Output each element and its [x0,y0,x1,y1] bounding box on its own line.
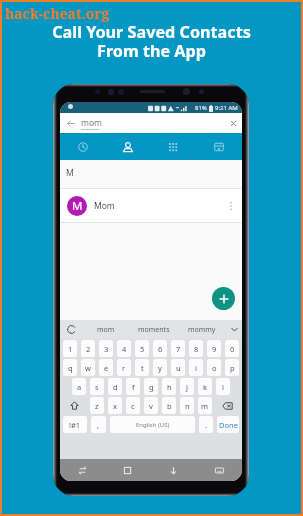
staticText: 1 [68,344,73,354]
staticText: 5 [140,344,145,354]
button[interactable]: m [198,397,212,414]
staticText: Mom [94,200,115,212]
button[interactable]: l [216,378,230,395]
staticText: k [203,382,208,392]
button[interactable]: c [126,397,140,414]
button[interactable]: v [144,397,158,414]
button[interactable]: Back [64,117,77,130]
button[interactable]: Voicemail [196,133,242,160]
button[interactable]: a [72,378,86,395]
staticText: f [132,382,135,392]
button[interactable]: More options [224,199,238,213]
button[interactable]: 2 [81,340,95,357]
button[interactable]: Home [105,459,150,481]
button[interactable]: Expand suggestions [226,320,242,339]
button[interactable]: k [198,378,212,395]
button[interactable]: Back [150,459,196,481]
button[interactable]: Clear search [227,117,240,130]
button[interactable]: y [153,359,167,376]
button[interactable]: 8 [189,340,203,357]
button[interactable]: M [60,189,242,223]
button[interactable]: 3 [99,340,113,357]
staticText: t [141,363,144,373]
staticText: p [230,363,235,373]
staticText: M [66,167,74,179]
button[interactable]: mommy [178,320,226,339]
button[interactable]: 5 [135,340,149,357]
staticText: n [185,401,190,411]
button[interactable]: Voice input [60,320,82,339]
button[interactable]: Done [217,416,239,433]
staticText: mommy [188,325,216,335]
button[interactable]: Shift [63,397,86,414]
button[interactable]: d [108,378,122,395]
staticText: y [158,363,162,373]
button[interactable]: . [199,416,213,433]
staticText: , [97,420,100,430]
staticText: 81% [195,104,207,112]
button[interactable]: 6 [153,340,167,357]
button[interactable]: b [162,397,176,414]
staticText: d [113,382,118,392]
staticText: a [77,382,82,392]
button[interactable]: , [91,416,106,433]
button[interactable]: 1 [63,340,77,357]
button[interactable]: x [108,397,122,414]
button[interactable]: Add contact [212,287,235,310]
button[interactable]: q [63,359,77,376]
button[interactable]: i [189,359,203,376]
staticText: M [72,198,83,214]
staticText: c [131,401,135,411]
button[interactable]: s [90,378,104,395]
button[interactable]: Recents [60,133,105,160]
staticText: mom [97,325,115,335]
button[interactable]: 0 [225,340,239,357]
staticText: 2 [86,344,91,354]
staticText: l [222,382,224,392]
button[interactable]: mom [82,320,130,339]
button[interactable]: j [180,378,194,395]
button[interactable]: Contacts [105,133,150,160]
staticText: moments [138,325,170,335]
button[interactable]: r [117,359,131,376]
button[interactable]: f [126,378,140,395]
button[interactable]: 7 [171,340,185,357]
staticText: w [85,363,91,373]
button[interactable]: Recent apps [60,459,105,481]
staticText: 8 [194,344,199,354]
staticText: z [95,401,99,411]
staticText: 9 [212,344,217,354]
button[interactable]: o [207,359,221,376]
button[interactable]: English (US) [110,416,195,433]
button[interactable]: 9 [207,340,221,357]
staticText: 7 [176,344,181,354]
button[interactable]: !#1 [63,416,87,433]
staticText: e [104,363,109,373]
staticText: 9:21 AM [215,104,238,112]
staticText: 6 [158,344,163,354]
button[interactable]: n [180,397,194,414]
button[interactable]: g [144,378,158,395]
staticText: m [201,401,209,411]
staticText: r [122,363,126,373]
staticText: !#1 [69,420,81,430]
button[interactable]: moments [130,320,178,339]
button[interactable]: p [225,359,239,376]
staticText: j [186,382,188,392]
button[interactable]: Backspace [216,397,239,414]
staticText: hack-cheat.org [5,4,110,23]
button[interactable]: 4 [117,340,131,357]
staticText: q [68,363,73,373]
button[interactable]: z [90,397,104,414]
staticText: b [167,401,172,411]
button[interactable]: w [81,359,95,376]
staticText: h [167,382,172,392]
button[interactable]: u [171,359,185,376]
button[interactable]: t [135,359,149,376]
button[interactable]: h [162,378,176,395]
button[interactable]: Hide keyboard [196,459,242,481]
button[interactable]: e [99,359,113,376]
staticText: . [205,420,208,430]
staticText: v [149,401,153,411]
button[interactable]: Keypad [150,133,196,160]
